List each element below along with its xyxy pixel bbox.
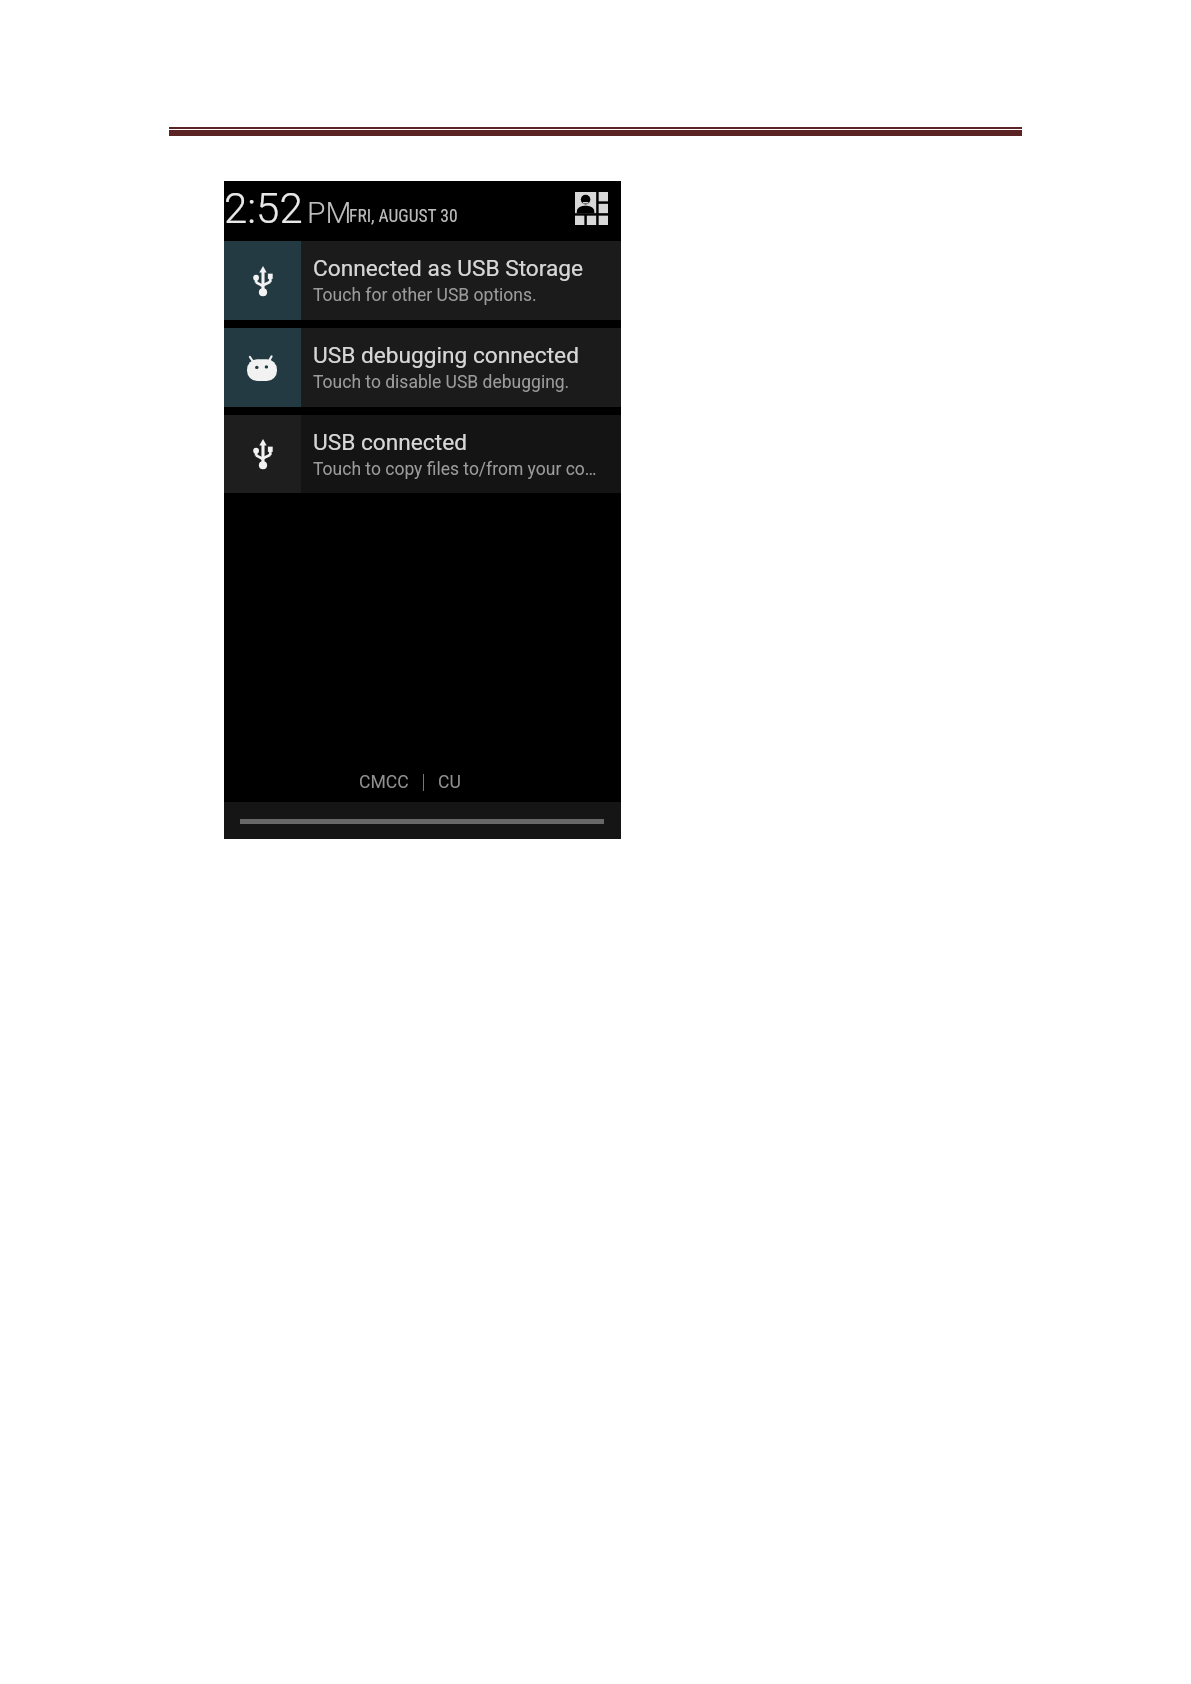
- staticText: Touch for other USB options.: [313, 285, 537, 306]
- staticText: USB debugging connected: [313, 342, 579, 369]
- button[interactable]: Quick settings: [575, 192, 608, 225]
- staticText: CMCC: [359, 772, 409, 793]
- staticText: PM: [307, 195, 352, 230]
- staticText: 2:52: [224, 184, 303, 233]
- staticText: Touch to copy files to/from your co…: [313, 459, 597, 480]
- button[interactable]: USB connected: [224, 415, 621, 493]
- staticText: Touch to disable USB debugging.: [313, 372, 570, 393]
- staticText: CU: [438, 772, 461, 793]
- staticText: USB connected: [313, 429, 467, 456]
- button[interactable]: Connected as USB Storage: [224, 241, 621, 320]
- staticText: FRI, AUGUST 30: [349, 206, 458, 227]
- staticText: Connected as USB Storage: [313, 255, 584, 282]
- button[interactable]: USB debugging connected: [224, 328, 621, 407]
